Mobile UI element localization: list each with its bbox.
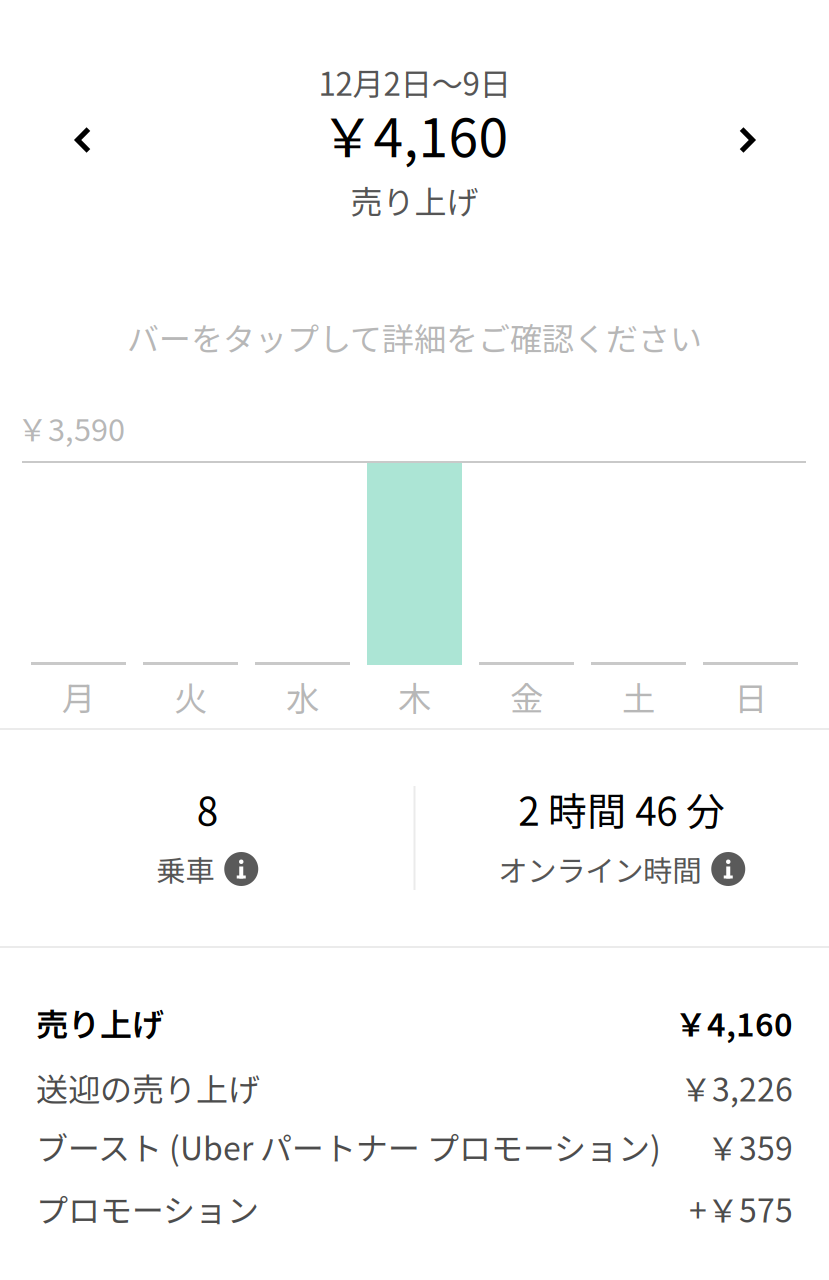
button[interactable]: ブースト (Uber パートナー プロモーション) — [0, 1130, 829, 1163]
staticText: ￥4,160 — [320, 95, 508, 173]
staticText: ￥4,160 — [675, 999, 793, 1046]
button[interactable]: 水 — [255, 463, 350, 728]
button[interactable]: 送迎の売り上げ — [0, 1071, 829, 1104]
staticText: 火 — [174, 672, 207, 721]
staticText: 金 — [510, 672, 543, 721]
staticText: ￥359 — [707, 1123, 793, 1170]
button[interactable]: 売り上げ — [0, 1005, 829, 1040]
button[interactable]: 土 — [591, 463, 686, 728]
staticText: ￥3,590 — [17, 406, 125, 450]
staticText: 12月2日〜9日 — [318, 59, 510, 105]
button[interactable]: 金 — [479, 463, 574, 728]
staticText: 送迎の売り上げ — [36, 1064, 260, 1111]
staticText: バーをタップして詳細をご確認ください — [127, 314, 702, 360]
staticText: 水 — [286, 672, 319, 721]
staticText: 2 時間 46 分 — [518, 781, 725, 837]
button[interactable]: 月 — [31, 463, 126, 728]
staticText: 土 — [622, 672, 655, 721]
staticText: 乗車 — [156, 848, 214, 890]
button[interactable]: 次の週 — [701, 91, 793, 189]
staticText: 売り上げ — [36, 999, 164, 1046]
staticText: 木 — [398, 672, 431, 721]
staticText: 月 — [62, 672, 95, 721]
staticText: ブースト (Uber パートナー プロモーション) — [36, 1123, 661, 1170]
staticText: 売り上げ — [350, 177, 478, 223]
button[interactable]: プロモーション — [0, 1192, 829, 1225]
staticText: +￥575 — [689, 1185, 793, 1232]
staticText: ￥3,226 — [680, 1064, 793, 1111]
button[interactable]: オンライン時間 — [498, 851, 745, 887]
staticText: オンライン時間 — [498, 848, 701, 890]
staticText: 日 — [734, 672, 767, 721]
button[interactable]: 木 — [367, 463, 462, 728]
button[interactable]: 火 — [143, 463, 238, 728]
button[interactable]: 前の週 — [37, 91, 129, 189]
button[interactable]: 日 — [703, 463, 798, 728]
staticText: プロモーション — [36, 1185, 259, 1232]
button[interactable]: 乗車 — [156, 851, 258, 887]
staticText: 8 — [197, 781, 218, 837]
